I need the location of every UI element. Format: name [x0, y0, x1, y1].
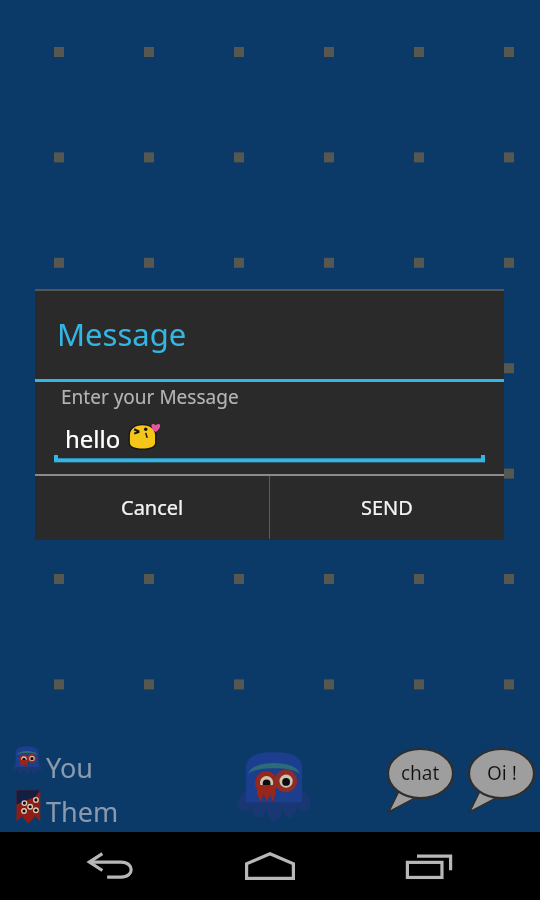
- button[interactable]: Your creature: [235, 746, 313, 824]
- staticText: Enter your Message: [61, 384, 239, 410]
- staticText: chat: [401, 760, 440, 786]
- staticText: Cancel: [121, 494, 184, 521]
- button[interactable]: Recent apps: [369, 832, 489, 900]
- staticText: You: [46, 749, 93, 786]
- button[interactable]: Enter your Message: [35, 382, 504, 474]
- button[interactable]: Back: [51, 832, 171, 900]
- staticText: SEND: [361, 494, 413, 521]
- button[interactable]: chat: [388, 749, 453, 812]
- button[interactable]: Oi !: [469, 749, 534, 812]
- staticText: hello: [65, 422, 127, 455]
- staticText: Them: [46, 793, 119, 830]
- staticText: Oi !: [487, 760, 517, 786]
- button[interactable]: Cancel: [35, 476, 269, 539]
- button[interactable]: SEND: [270, 476, 504, 539]
- button[interactable]: Home: [210, 832, 330, 900]
- staticText: Message: [57, 313, 187, 355]
